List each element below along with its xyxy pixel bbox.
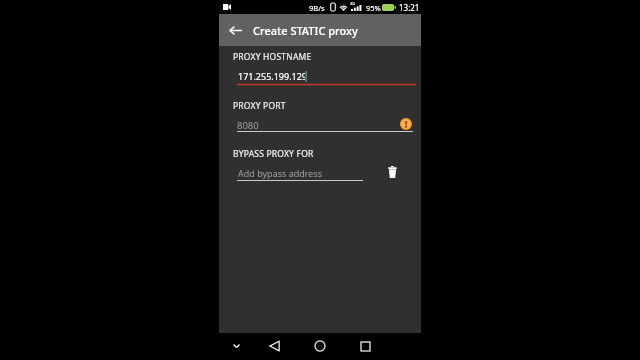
staticText: 4G — [350, 1, 356, 6]
button[interactable]: Delete bypass address — [382, 162, 402, 182]
staticText: Add bypass address — [238, 167, 323, 179]
staticText: 9B/s — [309, 3, 325, 13]
staticText: PROXY PORT — [233, 100, 286, 112]
button[interactable]: Navigate up — [220, 14, 250, 46]
staticText: 8080 — [237, 119, 259, 132]
staticText: 95% — [366, 3, 381, 13]
staticText: 13:21 — [399, 2, 420, 13]
staticText: Create STATIC proxy — [253, 23, 358, 38]
button[interactable]: Recent apps — [352, 333, 378, 359]
button[interactable]: Hide keyboard — [225, 333, 247, 359]
button[interactable]: Back — [261, 333, 287, 359]
staticText: PROXY HOSTNAME — [233, 51, 312, 63]
button[interactable]: Home — [307, 333, 333, 359]
staticText: BYPASS PROXY FOR — [233, 148, 314, 160]
staticText: 171.255.199.129 — [238, 70, 308, 82]
